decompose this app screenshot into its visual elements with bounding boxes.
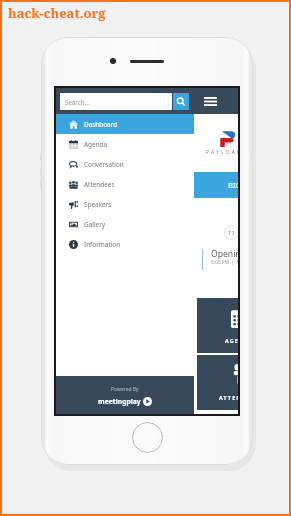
button[interactable]: BIG IDEAS — [194, 172, 238, 198]
staticText: Agenda — [84, 140, 108, 149]
staticText: ATTENDEES — [219, 394, 238, 401]
button[interactable]: Search — [173, 93, 189, 110]
staticText: meetingplay — [98, 397, 141, 406]
staticText: Powered By — [111, 386, 139, 393]
staticText: hack-cheat.org — [8, 4, 106, 22]
button[interactable]: AGENDA — [197, 298, 238, 353]
staticText: P A Y L O A D — [206, 149, 238, 155]
button[interactable]: Menu — [198, 89, 222, 113]
staticText: AGENDA — [225, 337, 238, 344]
button[interactable]: ATTENDEES — [197, 355, 238, 410]
staticText: Search... — [65, 98, 90, 106]
button[interactable]: Speakers — [56, 194, 194, 214]
staticText: Gallery — [84, 220, 106, 229]
button[interactable]: Search... — [60, 93, 172, 110]
staticText: 11 — [228, 229, 235, 237]
button[interactable]: Attendees — [56, 174, 194, 194]
staticText: Speakers — [84, 200, 112, 209]
staticText: Information — [84, 240, 121, 249]
staticText: Conversation — [84, 160, 124, 169]
staticText: Dashboard — [84, 120, 118, 129]
staticText: BIG IDEAS — [228, 180, 238, 190]
button[interactable]: Conversation — [56, 154, 194, 174]
button[interactable]: Information — [56, 234, 194, 254]
button[interactable]: 11 — [224, 225, 238, 240]
button[interactable]: Gallery — [56, 214, 194, 234]
staticText: 6:00 PM | Ma — [211, 259, 238, 266]
staticText: Opening Keyn — [211, 248, 238, 260]
button[interactable]: Agenda — [56, 134, 194, 154]
staticText: Attendees — [84, 180, 115, 189]
button[interactable]: Dashboard — [56, 114, 194, 134]
